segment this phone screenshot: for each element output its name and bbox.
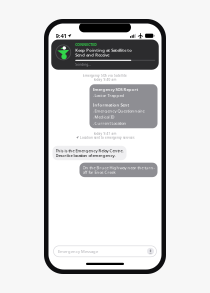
staticText: Emergency Message: [58, 249, 98, 254]
staticText: - Lost or Trapped: [92, 93, 124, 98]
staticText: - Medical ID: [92, 115, 114, 119]
staticText: Emergency SOS Report: [92, 87, 138, 92]
button[interactable]: Emergency Message: [48, 246, 161, 263]
staticText: Location sent to emergency services: [80, 136, 134, 139]
staticText: Today 9:40 am: [93, 78, 116, 81]
staticText: Sending...: [75, 62, 91, 66]
staticText: Information Sent: [92, 102, 129, 107]
staticText: CONNECTED: [75, 43, 96, 47]
staticText: Emergency SOS via Satellite: [83, 74, 127, 77]
staticText: Keep Pointing at Satellite to Send and R…: [75, 48, 132, 57]
staticText: On the Bruce Highway near the turn- off …: [82, 165, 154, 175]
staticText: - Emergency Questionnaire: [92, 109, 144, 113]
staticText: Today 9:41 am: [93, 132, 116, 135]
staticText: 9:41: [55, 32, 66, 39]
staticText: - Current Location: [92, 121, 126, 125]
staticText: This is the Emergency Relay Centre. Desc…: [55, 148, 123, 158]
